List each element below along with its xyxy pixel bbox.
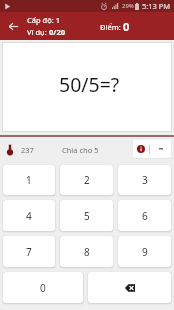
button[interactable]: 6 bbox=[118, 200, 171, 231]
staticText: 237 bbox=[21, 145, 34, 155]
button[interactable]: Backspace bbox=[88, 272, 171, 303]
staticText: 4 bbox=[26, 209, 32, 223]
staticText: 5 bbox=[84, 209, 90, 223]
staticText: 29% bbox=[122, 2, 134, 10]
staticText: 8 bbox=[84, 245, 90, 259]
button[interactable]: Options bbox=[150, 140, 171, 158]
staticText: Ví dụ: bbox=[27, 27, 49, 37]
staticText: Cấp độ: 1 bbox=[27, 15, 60, 25]
button[interactable]: 8 bbox=[60, 236, 113, 267]
staticText: Điểm: bbox=[100, 22, 123, 32]
button[interactable]: Back bbox=[2, 15, 24, 37]
staticText: 0/20 bbox=[49, 27, 65, 37]
staticText: 3 bbox=[142, 173, 148, 187]
button[interactable]: Info bbox=[133, 140, 149, 158]
staticText: 6 bbox=[142, 209, 148, 223]
staticText: 9 bbox=[142, 245, 148, 259]
button[interactable]: 1 bbox=[3, 165, 55, 195]
button[interactable]: 0 bbox=[3, 272, 83, 303]
button[interactable]: 3 bbox=[118, 165, 171, 195]
staticText: 50/5=? bbox=[59, 71, 120, 98]
button[interactable]: 5 bbox=[60, 200, 113, 231]
staticText: 7 bbox=[26, 245, 32, 259]
button[interactable]: 2 bbox=[60, 165, 113, 195]
staticText: 0 bbox=[123, 19, 130, 34]
staticText: 0 bbox=[40, 281, 46, 295]
button[interactable]: 7 bbox=[3, 236, 55, 267]
staticText: 1 bbox=[26, 173, 32, 187]
button[interactable]: 9 bbox=[118, 236, 171, 267]
staticText: 5:13 PM bbox=[142, 1, 171, 11]
button[interactable]: 4 bbox=[3, 200, 55, 231]
staticText: Chia cho 5 bbox=[62, 145, 99, 155]
staticText: 2 bbox=[84, 173, 90, 187]
